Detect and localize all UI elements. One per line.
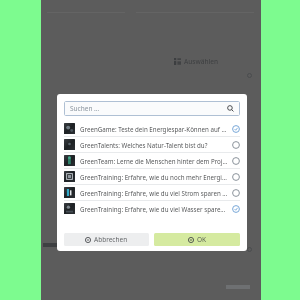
button[interactable]: GreenTraining: Erfahre, wie du noch mehr… [57, 169, 247, 184]
button[interactable]: GreenTeam: Lerne die Menschen hinter dem… [57, 153, 247, 168]
staticText: OK [197, 235, 207, 244]
other: Suchen [227, 105, 234, 112]
button[interactable]: Nicht ausgewählt [232, 141, 240, 149]
staticText: GreenTraining: Erfahre, wie du viel Wass… [80, 205, 228, 213]
staticText: Abbrechen [94, 235, 128, 244]
button[interactable]: OK [154, 233, 240, 246]
button[interactable]: GreenTraining: Erfahre, wie du viel Stro… [57, 185, 247, 200]
button[interactable]: Ausgewählt [232, 205, 240, 213]
staticText: Auswählen [184, 57, 219, 66]
button[interactable]: Nicht ausgewählt [232, 157, 240, 165]
button[interactable]: Auswählen [174, 57, 219, 66]
button[interactable]: Nicht ausgewählt [232, 173, 240, 181]
button[interactable]: Suchen … [64, 101, 240, 116]
button[interactable]: Nicht ausgewählt [232, 189, 240, 197]
button[interactable]: Ausgewählt [232, 125, 240, 133]
staticText: GreenGame: Teste dein Energiespar-Können… [80, 125, 228, 133]
staticText: GreenTraining: Erfahre, wie du noch mehr… [80, 173, 228, 181]
staticText: GreenTeam: Lerne die Menschen hinter dem… [80, 157, 228, 165]
button[interactable]: GreenGame: Teste dein Energiespar-Können… [57, 121, 247, 136]
staticText: GreenTraining: Erfahre, wie du viel Stro… [80, 189, 228, 197]
button[interactable]: Abbrechen [64, 233, 149, 246]
button[interactable]: GreenTalents: Welches Natur-Talent bist … [57, 137, 247, 152]
other: Auswählen [174, 58, 181, 65]
button[interactable]: GreenTraining: Erfahre, wie du viel Wass… [57, 201, 247, 216]
staticText: GreenTalents: Welches Natur-Talent bist … [80, 141, 208, 149]
staticText: Suchen … [70, 104, 100, 113]
